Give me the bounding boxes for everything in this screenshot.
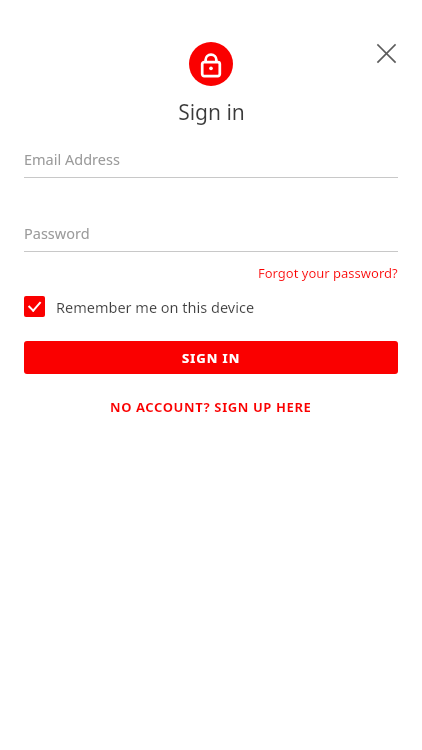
button[interactable]: Password — [24, 223, 398, 252]
button[interactable]: Forgot your password? — [258, 262, 398, 284]
staticText: Sign in — [178, 98, 245, 127]
staticText: Email Address — [24, 149, 120, 169]
staticText: Remember me on this device — [56, 297, 255, 317]
staticText: Forgot your password? — [258, 264, 398, 282]
staticText: SIGN IN — [182, 349, 241, 367]
button[interactable]: NO ACCOUNT? SIGN UP HERE — [98, 394, 324, 420]
staticText: Password — [24, 223, 90, 243]
button[interactable]: Close — [364, 31, 408, 75]
staticText: NO ACCOUNT? SIGN UP HERE — [110, 398, 312, 416]
button[interactable]: Email Address — [24, 149, 398, 178]
button[interactable]: SIGN IN — [24, 341, 398, 374]
button[interactable]: Remember me on this device — [24, 296, 398, 317]
